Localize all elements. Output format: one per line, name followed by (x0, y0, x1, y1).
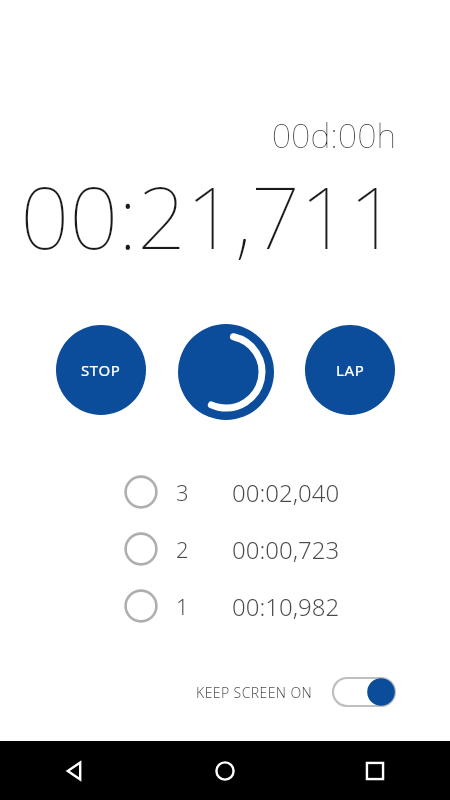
staticText: 3 (176, 477, 189, 507)
staticText: 00:02,040 (232, 476, 340, 509)
staticText: 00:21,711 (20, 157, 398, 274)
staticText: LAP (336, 360, 365, 380)
button[interactable]: Recent apps (300, 741, 450, 800)
staticText: STOP (81, 360, 121, 380)
button[interactable]: STOP (56, 325, 146, 415)
button[interactable]: LAP (305, 325, 395, 415)
staticText: 00:10,982 (232, 590, 340, 623)
staticText: 2 (176, 534, 189, 564)
staticText: 00:00,723 (232, 533, 340, 566)
staticText: KEEP SCREEN ON (196, 683, 313, 702)
button[interactable]: 2 (0, 532, 450, 566)
button[interactable]: Back (0, 741, 150, 800)
button[interactable]: Pause (178, 324, 274, 420)
button[interactable]: 1 (0, 589, 450, 623)
staticText: 00d:00h (271, 112, 396, 158)
staticText: 1 (176, 591, 189, 621)
button[interactable]: KEEP SCREEN ON (196, 672, 396, 712)
button[interactable]: Home (150, 741, 300, 800)
button[interactable]: 3 (0, 475, 450, 509)
